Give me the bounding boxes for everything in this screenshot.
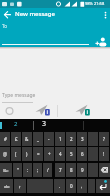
staticText: 2 (14, 120, 18, 128)
staticText: = (37, 151, 40, 157)
staticText: + (48, 151, 51, 157)
staticText: - (48, 136, 50, 142)
staticText: / (47, 167, 49, 173)
staticText: @ (3, 151, 8, 157)
button[interactable]: " (13, 163, 22, 177)
button[interactable]: 5 (66, 147, 76, 161)
staticText: 6 (81, 151, 84, 157)
button[interactable]: abc (0, 179, 13, 193)
button[interactable]: _ (33, 132, 43, 146)
staticText: £ (15, 136, 18, 142)
staticText: , (81, 183, 83, 189)
button[interactable]: 8 (66, 163, 76, 177)
staticText: 7 (59, 167, 62, 173)
staticText: abc (4, 184, 10, 189)
staticText: 3 (42, 119, 47, 129)
staticText: _ (37, 136, 39, 142)
button[interactable] (99, 163, 110, 177)
staticText: 3 (81, 136, 84, 142)
staticText: : (27, 167, 29, 173)
button[interactable]: . (54, 179, 65, 193)
button[interactable] (0, 22, 110, 47)
button[interactable]: 4 (55, 147, 65, 161)
staticText: 98% 21:58 (85, 1, 105, 6)
button[interactable]: = (33, 147, 43, 161)
button[interactable] (0, 90, 110, 119)
staticText: ? (103, 136, 105, 142)
button[interactable]: 6 (77, 147, 87, 161)
staticText: . (59, 183, 61, 189)
staticText: 9 (81, 167, 84, 173)
button[interactable]: & (22, 132, 32, 146)
staticText: ! (103, 151, 105, 157)
button[interactable]: / (43, 163, 52, 177)
staticText: " (17, 167, 19, 173)
button[interactable] (95, 36, 108, 47)
staticText: 8 (70, 167, 73, 173)
button[interactable]: 0 (66, 179, 76, 193)
button[interactable]: , (14, 179, 26, 193)
button[interactable]: : (23, 163, 32, 177)
button[interactable]: 2 (66, 132, 76, 146)
button[interactable]: @ (0, 147, 10, 161)
button[interactable]: 1 (55, 132, 65, 146)
button[interactable]: (&= (0, 163, 12, 177)
button[interactable]: ! (99, 147, 109, 161)
staticText: # (4, 136, 7, 142)
staticText: To (2, 23, 7, 29)
button[interactable]: 7 (55, 163, 65, 177)
button[interactable] (96, 179, 110, 193)
staticText: 5 (70, 151, 73, 157)
button[interactable]: £ (11, 132, 21, 146)
staticText: ( (15, 151, 17, 157)
button[interactable]: 3 (77, 132, 87, 146)
button[interactable]: ( (11, 147, 21, 161)
staticText: ) (26, 151, 28, 157)
button[interactable]: + (44, 147, 54, 161)
staticText: & (25, 136, 29, 142)
button[interactable]: ; (33, 163, 42, 177)
button[interactable] (0, 8, 14, 22)
staticText: , (19, 183, 21, 189)
button[interactable] (100, 8, 110, 22)
staticText: 1 (59, 136, 62, 142)
staticText: Type message (2, 92, 36, 99)
staticText: ; (37, 167, 39, 173)
button[interactable]: - (44, 132, 54, 146)
staticText: (&= (3, 168, 9, 173)
button[interactable]: , (77, 179, 87, 193)
button[interactable]: # (0, 132, 10, 146)
staticText: 4 (59, 151, 62, 157)
button[interactable]: ? (99, 132, 109, 146)
button[interactable]: 9 (77, 163, 87, 177)
staticText: 2 (70, 136, 73, 142)
button[interactable]: ) (22, 147, 32, 161)
staticText: New message (15, 10, 55, 18)
staticText: 0 (70, 183, 73, 189)
